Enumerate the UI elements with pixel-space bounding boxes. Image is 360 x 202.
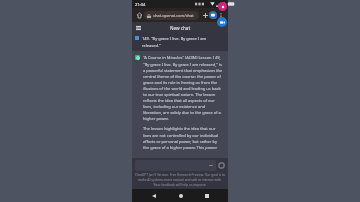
staticText: 21:04 bbox=[135, 2, 146, 7]
button[interactable] bbox=[135, 160, 216, 171]
button[interactable]: Screen recorder bbox=[217, 17, 227, 27]
staticText: "A Course in Miracles" (ACIM) Lesson 149… bbox=[143, 55, 224, 121]
button[interactable]: Home bbox=[175, 190, 186, 201]
staticText: chat.openai.com/chat bbox=[153, 13, 194, 18]
button[interactable]: Menu bbox=[134, 23, 143, 32]
button[interactable]: More options bbox=[217, 11, 225, 19]
staticText: ChatGPT Jan 9 Version. Free Research Pre… bbox=[135, 173, 225, 187]
button[interactable]: Tabs bbox=[209, 11, 217, 19]
staticText: 149. "By grace I live. By grace I am rel… bbox=[142, 36, 224, 48]
staticText: The lesson highlights the idea that our … bbox=[143, 126, 224, 150]
button[interactable]: chat.openai.com/chat bbox=[144, 11, 199, 20]
button[interactable]: Recording indicator bbox=[218, 2, 227, 11]
button[interactable]: Back bbox=[148, 190, 159, 201]
staticText: New chat bbox=[170, 25, 191, 31]
button[interactable]: Stop generating bbox=[218, 162, 225, 169]
button[interactable]: New tab bbox=[201, 11, 209, 19]
button[interactable]: Recent apps bbox=[201, 190, 212, 201]
button[interactable]: Home bbox=[135, 11, 143, 19]
button[interactable]: Screenshot bbox=[209, 11, 217, 19]
